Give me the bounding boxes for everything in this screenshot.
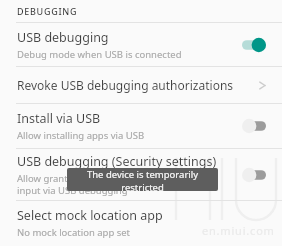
button[interactable]: Revoke USB debugging authorizations — [0, 67, 282, 103]
button[interactable]: USB debugging (Security settings) — [0, 149, 282, 200]
staticText: Debug mode when USB is connected — [17, 48, 182, 61]
staticText: DEBUGGING — [17, 5, 78, 17]
button[interactable]: USB debugging toggle, on — [242, 37, 266, 53]
button[interactable]: Select mock location app — [0, 201, 282, 245]
staticText: en.miui.com — [202, 223, 275, 238]
staticText: USB debugging — [17, 29, 109, 46]
button[interactable]: USB debugging — [0, 23, 282, 66]
button[interactable]: Install via USB — [0, 104, 282, 148]
staticText: Allow installing apps via USB — [17, 129, 145, 142]
staticText: Install via USB — [17, 110, 101, 127]
staticText: The device is temporarily restricted — [67, 168, 218, 191]
staticText: Allow granting permissions and simulatin… — [17, 172, 208, 197]
button[interactable]: Install via USB toggle, off — [242, 118, 266, 134]
staticText: Revoke USB debugging authorizations — [17, 77, 258, 93]
staticText: No mock location app set — [17, 226, 131, 239]
button[interactable]: USB debugging security settings toggle, … — [242, 167, 266, 183]
staticText: Select mock location app — [17, 207, 163, 224]
staticText: USB debugging (Security settings) — [17, 153, 217, 170]
